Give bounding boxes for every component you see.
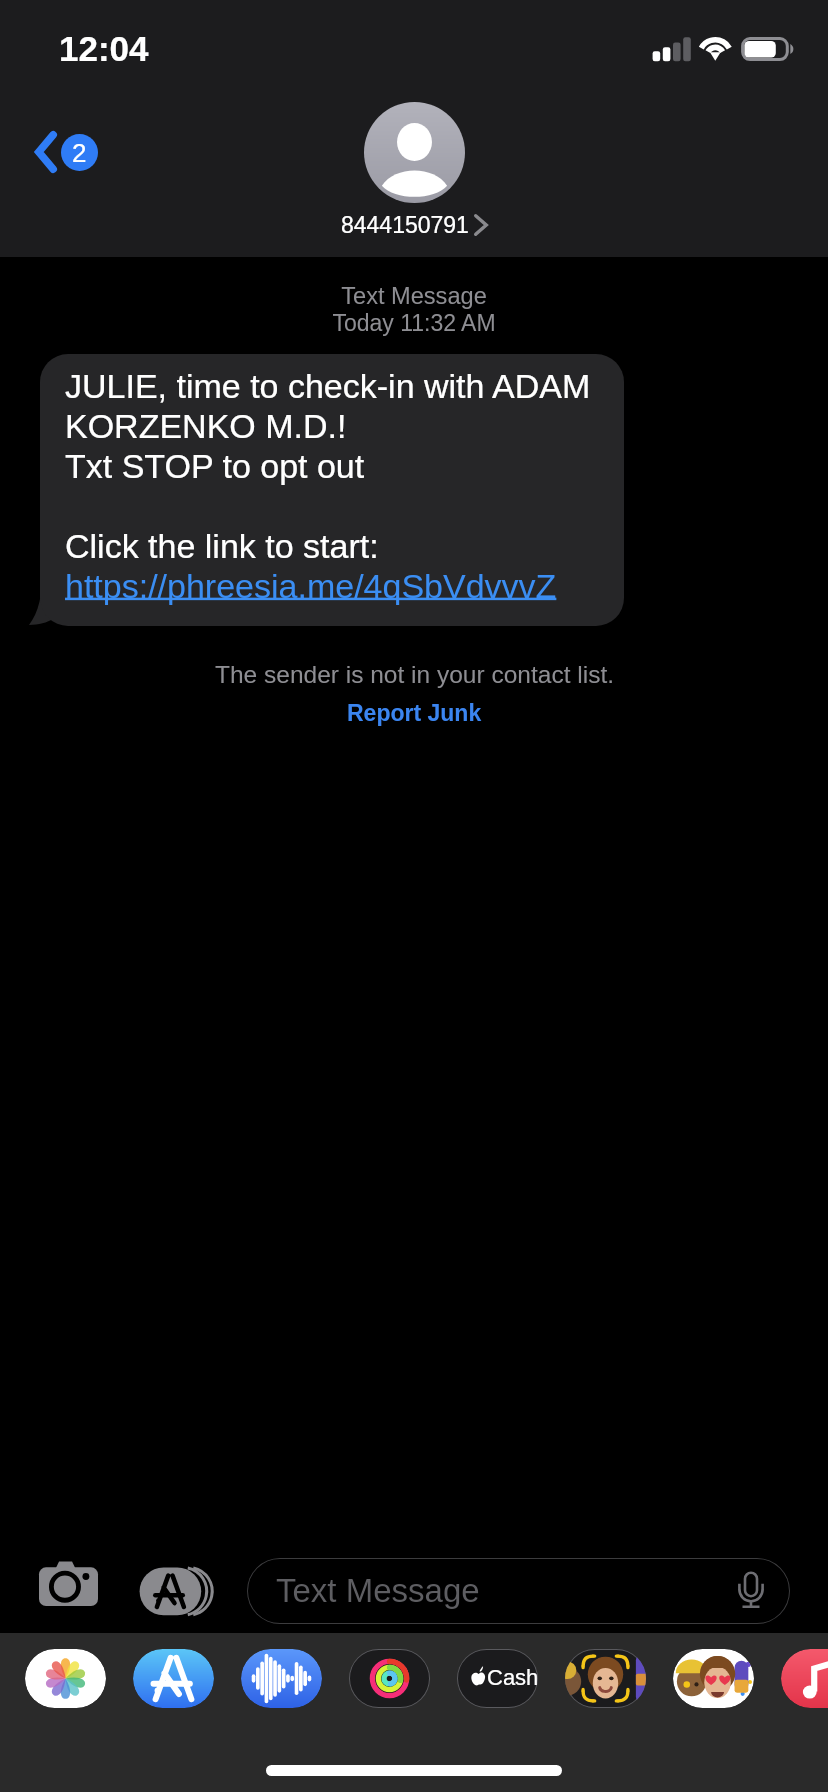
button[interactable]: 8444150791 [0,102,828,238]
button[interactable]: Text Message [247,1558,790,1624]
button[interactable]: Music [781,1649,828,1708]
staticText: JULIE, time to check-in with ADAM KORZEN… [65,367,599,605]
staticText: 8444150791 [341,212,469,238]
staticText: 2 [72,138,87,167]
staticText: Text Message Today 11:32 AM [332,283,496,336]
staticText: 12:04 [59,29,149,68]
staticText: Report Junk [347,700,482,726]
button[interactable]: App Store [133,1649,214,1708]
button[interactable]: Fitness [349,1649,430,1708]
staticText: Cash [487,1665,538,1690]
button[interactable]: JULIE, time to check-in with ADAM KORZEN… [40,354,624,626]
button[interactable]: Apps [132,1561,218,1617]
button[interactable]: Memoji [565,1649,646,1708]
button[interactable]: Report Junk [335,698,494,728]
button[interactable]: Camera [20,1551,116,1615]
button[interactable]: Apple Cash [457,1649,538,1708]
staticText: Text Message [276,1572,480,1609]
button[interactable]: Back, 2 unread [18,112,118,192]
button[interactable]: Photos [25,1649,106,1708]
button[interactable]: Audio Message [241,1649,322,1708]
staticText: The sender is not in your contact list. [215,661,614,688]
button[interactable]: Memoji stickers [673,1649,754,1708]
